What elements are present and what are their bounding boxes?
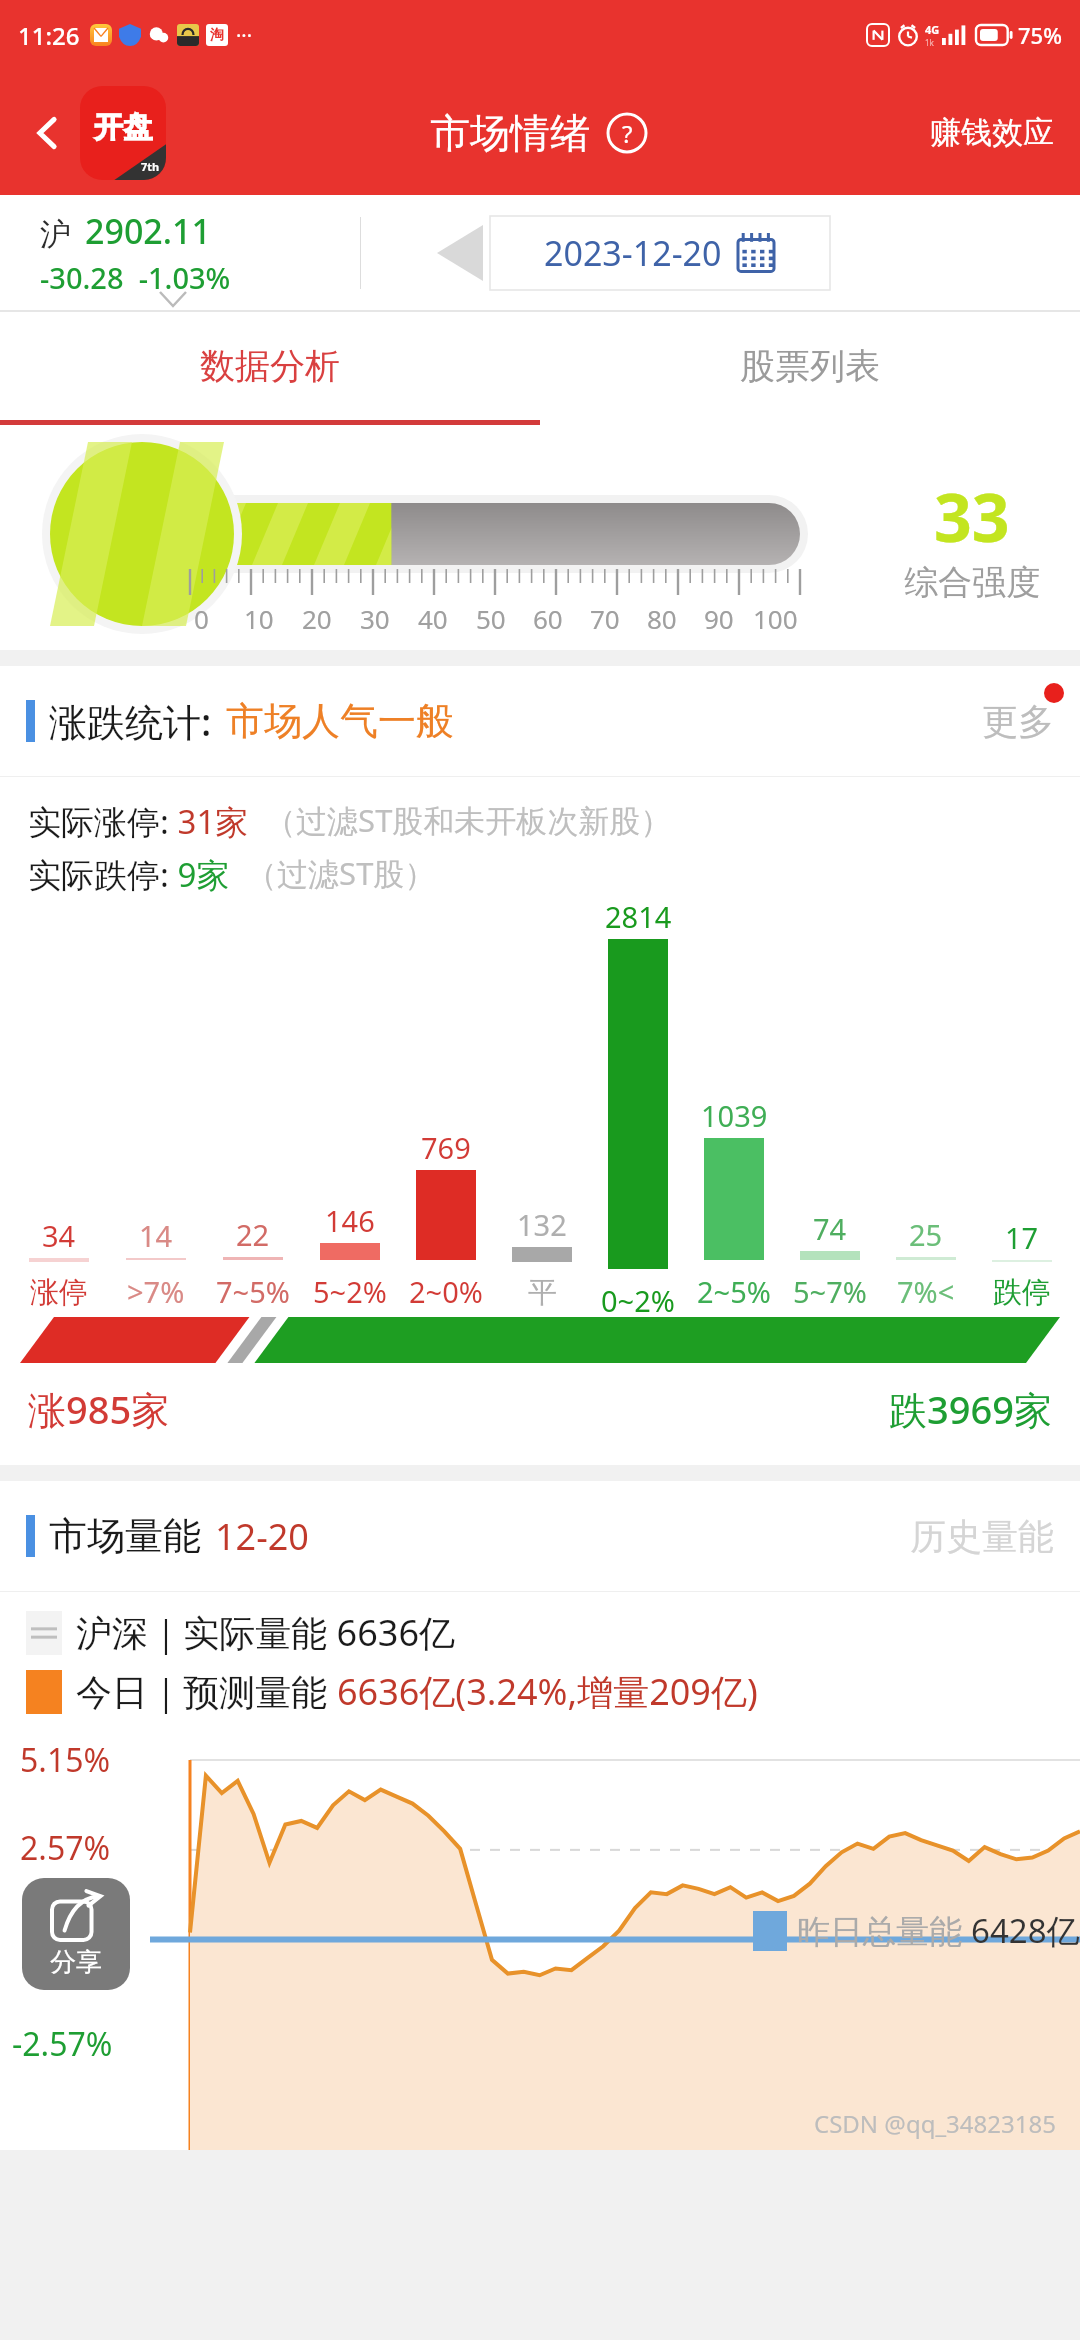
staticText: 市场人气一般 [226,697,454,745]
staticText: 5~2% [313,1272,387,1311]
staticText: 7~5% [216,1272,290,1311]
staticText: 34 [42,1216,76,1255]
staticText: 100 [753,601,798,636]
staticText: 50 [476,601,506,636]
staticText: ? [622,117,633,150]
staticText: 赚钱效应 [930,113,1054,152]
staticText: 0 [194,601,209,636]
staticText: 132 [517,1205,567,1244]
staticText: 20 [302,601,332,636]
staticText: 11:26 [18,19,80,52]
staticText: 40 [418,601,448,636]
staticText: 14 [139,1216,173,1255]
staticText: 跌3969家 [889,1383,1052,1435]
button[interactable]: Back [22,107,74,159]
staticText: 沪 [40,215,71,254]
staticText: -30.28 -1.03% [40,258,231,297]
button[interactable]: App logo [80,86,166,180]
staticText: 7th [141,159,160,174]
staticText: 33 [934,471,1010,561]
staticText: 2.57% [20,1826,111,1870]
staticText: 1k [925,37,934,48]
button[interactable]: 沪 [40,208,231,297]
staticText: 实际涨停: [28,799,169,844]
staticText: 17 [1005,1218,1039,1257]
button[interactable]: Help [604,110,650,156]
staticText: 1039 [701,1096,768,1135]
staticText: CSDN @qq_34823185 [814,2107,1056,2140]
staticText: 90 [704,601,734,636]
staticText: 6428亿 [971,1908,1080,1953]
staticText: 4G [925,22,940,37]
staticText: 市场量能 [49,1512,201,1560]
staticText: 6636亿(3.24%,增量209亿) [337,1667,758,1716]
staticText: 综合强度 [904,561,1040,604]
staticText: 涨跌统计: [49,695,212,747]
staticText: 市场情绪 [430,108,590,158]
button[interactable]: 市场量能 [26,1481,1054,1591]
button[interactable]: 赚钱效应 [930,113,1054,152]
staticText: 实际跌停: [28,852,169,897]
button[interactable]: 股票列表 [540,312,1080,420]
staticText: 2814 [605,897,672,936]
staticText: 25 [909,1215,943,1254]
staticText: 涨985家 [28,1383,170,1435]
button[interactable]: Share [22,1878,130,1990]
staticText: 22 [236,1215,270,1254]
staticText: 涨停 [30,1274,88,1311]
staticText: 2~0% [409,1272,483,1311]
staticText: 2023-12-20 [544,230,722,276]
staticText: 股票列表 [740,344,880,388]
staticText: 74 [813,1209,847,1248]
staticText: （过滤ST股） [230,852,436,894]
staticText: 更多 [982,699,1054,744]
staticText: 9家 [169,852,230,897]
staticText: 146 [325,1201,375,1240]
staticText: 沪深｜实际量能 6636亿 [76,1608,455,1657]
staticText: 60 [533,601,563,636]
staticText: 7%< [897,1272,955,1311]
staticText: 0~2% [601,1281,675,1317]
staticText: 5.15% [20,1738,111,1782]
staticText: 平 [528,1274,557,1311]
staticText: 淘 [210,26,224,44]
staticText: 10 [244,601,274,636]
staticText: 31家 [169,799,249,844]
staticText: 30 [360,601,390,636]
staticText: 开盘 [94,109,152,146]
staticText: 数据分析 [200,344,340,388]
staticText: （过滤ST股和未开板次新股） [249,799,672,841]
button[interactable]: 数据分析 [0,312,540,420]
button[interactable]: 2023-12-20 [490,216,830,290]
staticText: 2902.11 [85,208,211,254]
staticText: 今日｜预测量能 [76,1667,337,1716]
staticText: 跌停 [993,1274,1051,1311]
staticText: 70 [590,601,620,636]
staticText: -2.57% [12,2022,113,2066]
staticText: >7% [127,1272,185,1311]
staticText: 80 [647,601,677,636]
staticText: 5~7% [793,1272,867,1311]
staticText: 769 [421,1128,471,1167]
staticText: 75% [1018,20,1062,50]
button[interactable]: 涨跌统计: [26,666,1054,776]
staticText: ··· [236,22,253,49]
staticText: 2~5% [697,1272,771,1311]
staticText: 12-20 [215,1512,309,1561]
other: Previous day [437,225,483,281]
staticText: 分享 [50,1946,102,1979]
staticText: 历史量能 [910,1514,1054,1559]
staticText: 昨日总量能 [797,1908,971,1953]
